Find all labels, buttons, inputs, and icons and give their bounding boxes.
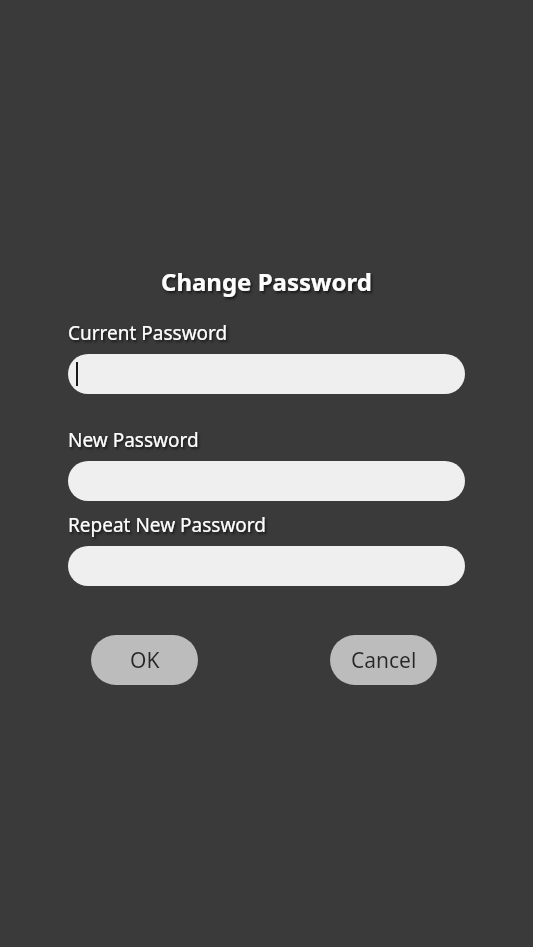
staticText: Change Password	[68, 265, 465, 298]
button[interactable]: Current Password input	[68, 354, 465, 394]
button[interactable]: OK	[91, 635, 198, 685]
button[interactable]: Repeat New Password input	[68, 546, 465, 586]
button[interactable]: Cancel	[330, 635, 437, 685]
staticText: Current Password	[68, 320, 228, 346]
staticText: Cancel	[351, 646, 417, 675]
button[interactable]: New Password input	[68, 461, 465, 501]
staticText: Repeat New Password	[68, 512, 266, 538]
staticText: OK	[130, 646, 160, 675]
staticText: New Password	[68, 427, 199, 453]
